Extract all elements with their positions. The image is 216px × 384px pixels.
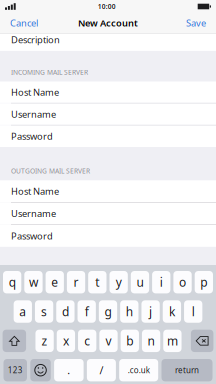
button[interactable]: Emoji — [30, 359, 51, 381]
staticText: m — [167, 333, 178, 349]
staticText: OUTGOING MAIL SERVER — [11, 166, 90, 175]
button[interactable]: Cancel — [5, 15, 43, 31]
button[interactable]: u — [131, 271, 149, 293]
staticText: s — [41, 304, 47, 319]
button[interactable]: Host Name — [0, 81, 216, 103]
button[interactable]: x — [57, 330, 75, 352]
staticText: d — [62, 304, 69, 319]
button[interactable]: Password — [0, 225, 216, 247]
staticText: a — [19, 304, 26, 319]
button[interactable]: g — [99, 300, 117, 323]
button[interactable]: Username — [0, 103, 216, 125]
staticText: Host Name — [11, 86, 59, 98]
staticText: y — [116, 274, 122, 290]
staticText: 123 — [8, 365, 23, 375]
button[interactable]: h — [120, 300, 138, 323]
button[interactable]: i — [152, 271, 170, 293]
button[interactable]: c — [78, 330, 96, 352]
staticText: q — [9, 274, 16, 290]
button[interactable]: / — [87, 359, 116, 381]
staticText: Host Name — [11, 185, 59, 197]
button[interactable]: Username — [0, 203, 216, 224]
staticText: Username — [11, 108, 56, 120]
button[interactable]: k — [163, 300, 181, 323]
staticText: x — [63, 333, 69, 349]
staticText: o — [179, 274, 186, 290]
button[interactable]: return — [161, 359, 212, 381]
button[interactable]: t — [88, 271, 106, 293]
button[interactable]: Description — [0, 34, 216, 51]
button[interactable]: d — [56, 300, 74, 323]
button[interactable]: l — [184, 300, 202, 323]
staticText: Password — [11, 230, 53, 242]
button[interactable]: a — [14, 300, 32, 323]
staticText: n — [148, 333, 155, 349]
staticText: w — [29, 274, 38, 290]
staticText: l — [192, 304, 195, 319]
button[interactable]: w — [24, 271, 43, 293]
staticText: c — [84, 333, 90, 349]
staticText: return — [175, 365, 199, 375]
staticText: b — [126, 333, 133, 349]
staticText: f — [85, 304, 89, 319]
button[interactable]: m — [163, 330, 181, 352]
button[interactable]: n — [142, 330, 160, 352]
staticText: / — [99, 363, 103, 377]
button[interactable]: . — [54, 359, 84, 381]
staticText: Description — [11, 34, 60, 46]
button[interactable]: Save — [181, 15, 211, 31]
staticText: Username — [11, 207, 56, 220]
button[interactable]: s — [35, 300, 53, 323]
staticText: z — [42, 333, 48, 349]
staticText: r — [73, 274, 78, 290]
staticText: v — [105, 333, 111, 349]
button[interactable]: o — [173, 271, 192, 293]
button[interactable]: .co.uk — [119, 359, 158, 381]
staticText: g — [104, 304, 111, 319]
staticText: i — [160, 274, 163, 290]
staticText: New Account — [78, 17, 138, 29]
staticText: t — [95, 274, 99, 290]
staticText: k — [169, 304, 175, 319]
button[interactable]: v — [99, 330, 118, 352]
button[interactable]: Password — [0, 125, 216, 147]
button[interactable]: 123 — [3, 359, 27, 381]
button[interactable]: j — [141, 300, 160, 323]
button[interactable]: f — [77, 300, 96, 323]
staticText: .co.uk — [128, 365, 150, 375]
staticText: u — [136, 274, 143, 290]
button[interactable]: p — [195, 271, 213, 293]
staticText: j — [149, 304, 152, 319]
button[interactable]: q — [3, 271, 21, 293]
button[interactable]: Host Name — [0, 180, 216, 202]
staticText: 10:00 — [98, 2, 116, 11]
button[interactable]: Shift — [3, 330, 26, 352]
button[interactable]: y — [109, 271, 128, 293]
staticText: . — [67, 363, 70, 377]
staticText: h — [126, 304, 133, 319]
button[interactable]: z — [35, 330, 54, 352]
staticText: p — [200, 274, 207, 290]
button[interactable]: Delete — [191, 330, 213, 352]
staticText: INCOMING MAIL SERVER — [11, 68, 88, 76]
staticText: Save — [186, 17, 206, 29]
staticText: Cancel — [10, 17, 38, 29]
button[interactable]: e — [46, 271, 64, 293]
button[interactable]: r — [67, 271, 85, 293]
staticText: e — [51, 274, 58, 290]
button[interactable]: b — [121, 330, 139, 352]
staticText: Password — [11, 130, 53, 142]
